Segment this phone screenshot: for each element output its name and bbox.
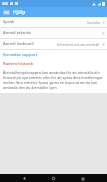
staticText: Hjälp (13, 9, 26, 16)
button[interactable]: Kontakta support (0, 50, 107, 59)
staticText: Svenska (87, 20, 100, 25)
staticText: Anmäl inaktuell (3, 41, 34, 47)
button[interactable]: Anmäl inaktuell (0, 39, 107, 49)
button[interactable]: Språk (0, 17, 107, 27)
button[interactable]: Home (51, 176, 56, 181)
staticText: Återställningsknappen kan användas för a… (3, 70, 104, 90)
button[interactable]: Recent apps (80, 176, 85, 181)
staticText: Anmäl teknisk (3, 30, 31, 36)
staticText: Kontakta support (3, 52, 38, 58)
staticText: Språk (3, 19, 15, 25)
button[interactable]: Anmäl teknisk (0, 28, 107, 38)
button[interactable]: Back (22, 176, 27, 181)
staticText: Informera oss om innehåll (57, 42, 100, 47)
staticText: Radera historik (3, 61, 34, 67)
button[interactable]: Open navigation menu (2, 8, 10, 16)
